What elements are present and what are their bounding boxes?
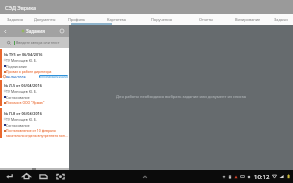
staticText: Согласование [6,123,30,128]
button[interactable]: № Л-5 от 06/04/2016 [0,80,69,106]
button[interactable]: Последние приложения [35,170,52,183]
button[interactable]: Задачи [269,14,293,25]
staticText: Отчеты [199,17,213,22]
staticText: № ТУ5 от 06/04/2016 [4,52,43,57]
button[interactable]: Назад [1,170,18,183]
staticText: Постановление от 10 февраля [6,128,56,133]
button[interactable]: Снимок экрана [52,170,69,183]
button[interactable]: Настройки [55,25,69,37]
button[interactable]: Задания [0,14,30,25]
button[interactable]: № ТУ5 от 06/04/2016 [0,49,69,78]
staticText: ТУ Минищев Ю. Б. [6,117,37,122]
button[interactable]: Назад [0,25,11,37]
button[interactable]: № П-8 от 06/04/2016 [0,108,69,138]
button[interactable]: Профиль [60,14,94,25]
staticText: Подписание [6,64,27,69]
button[interactable]: Введите автора или текст [14,39,62,46]
staticText: Для работы необходимо выбрать задание ил… [116,94,247,99]
staticText: Приказ о работе директора [6,69,52,74]
staticText: Письмо в ООО "Ярмак" [6,100,45,105]
button[interactable]: Картотека [94,14,138,25]
button[interactable]: Визирование [227,14,269,25]
staticText: Согласование [6,95,30,100]
staticText: 10:12 [254,173,270,181]
staticText: СЭД Эврика [5,4,37,11]
staticText: № П-8 от 06/04/2016 [4,111,42,116]
staticText: Задания [7,17,23,22]
staticText: Профиль [68,17,86,22]
staticText: Задачи [274,17,288,22]
staticText: ТУ Минищев Ю. Б. [6,58,37,63]
staticText: ТУ Минищев Ю. Б. [6,89,37,94]
button[interactable]: Главный экран [18,170,35,183]
staticText: касательно отдела внутреннего контроля [6,133,68,138]
staticText: № Л-5 от 06/04/2016 [4,83,42,88]
staticText: сроки исполнения [40,75,68,78]
button[interactable]: Поручения [138,14,185,25]
staticText: Картотека [107,17,126,22]
button[interactable]: Документы [30,14,60,25]
staticText: 06/04/2016 [6,75,26,78]
staticText: Визирование [235,17,261,22]
button[interactable]: сроки исполнения [39,75,68,78]
staticText: Задания [26,28,45,34]
staticText: Введите автора или текст [16,40,60,45]
button[interactable]: Отчеты [185,14,227,25]
staticText: Поручения [151,17,172,22]
staticText: Документы [34,17,56,22]
